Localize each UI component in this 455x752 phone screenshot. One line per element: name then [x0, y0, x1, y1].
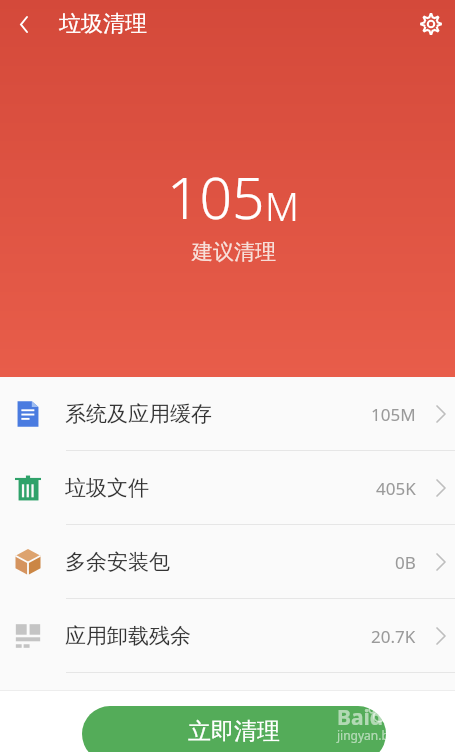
staticText: 105	[167, 158, 265, 236]
staticText: 105M	[371, 403, 416, 426]
staticText: 多余安装包	[65, 549, 170, 575]
button[interactable]: 多余安装包	[0, 525, 455, 599]
button[interactable]: Settings	[407, 0, 455, 48]
button[interactable]: 垃圾文件	[0, 451, 455, 525]
staticText: 20.7K	[371, 625, 416, 648]
staticText: M	[265, 179, 300, 232]
staticText: 系统及应用缓存	[65, 401, 212, 427]
staticText: 0B	[395, 551, 416, 574]
staticText: jingyan.baidu.com	[337, 727, 441, 743]
button[interactable]: 系统及应用缓存	[0, 377, 455, 451]
button[interactable]: 立即清理	[82, 706, 386, 752]
staticText: Baidu	[337, 703, 397, 732]
button[interactable]: 应用卸载残余	[0, 599, 455, 673]
staticText: 建议清理	[192, 239, 276, 265]
staticText: 垃圾清理	[59, 10, 147, 38]
staticText: 应用卸载残余	[65, 623, 191, 649]
staticText: 405K	[376, 477, 416, 500]
staticText: 立即清理	[188, 717, 280, 746]
staticText: 垃圾文件	[65, 475, 149, 501]
button[interactable]: Back	[0, 0, 48, 48]
